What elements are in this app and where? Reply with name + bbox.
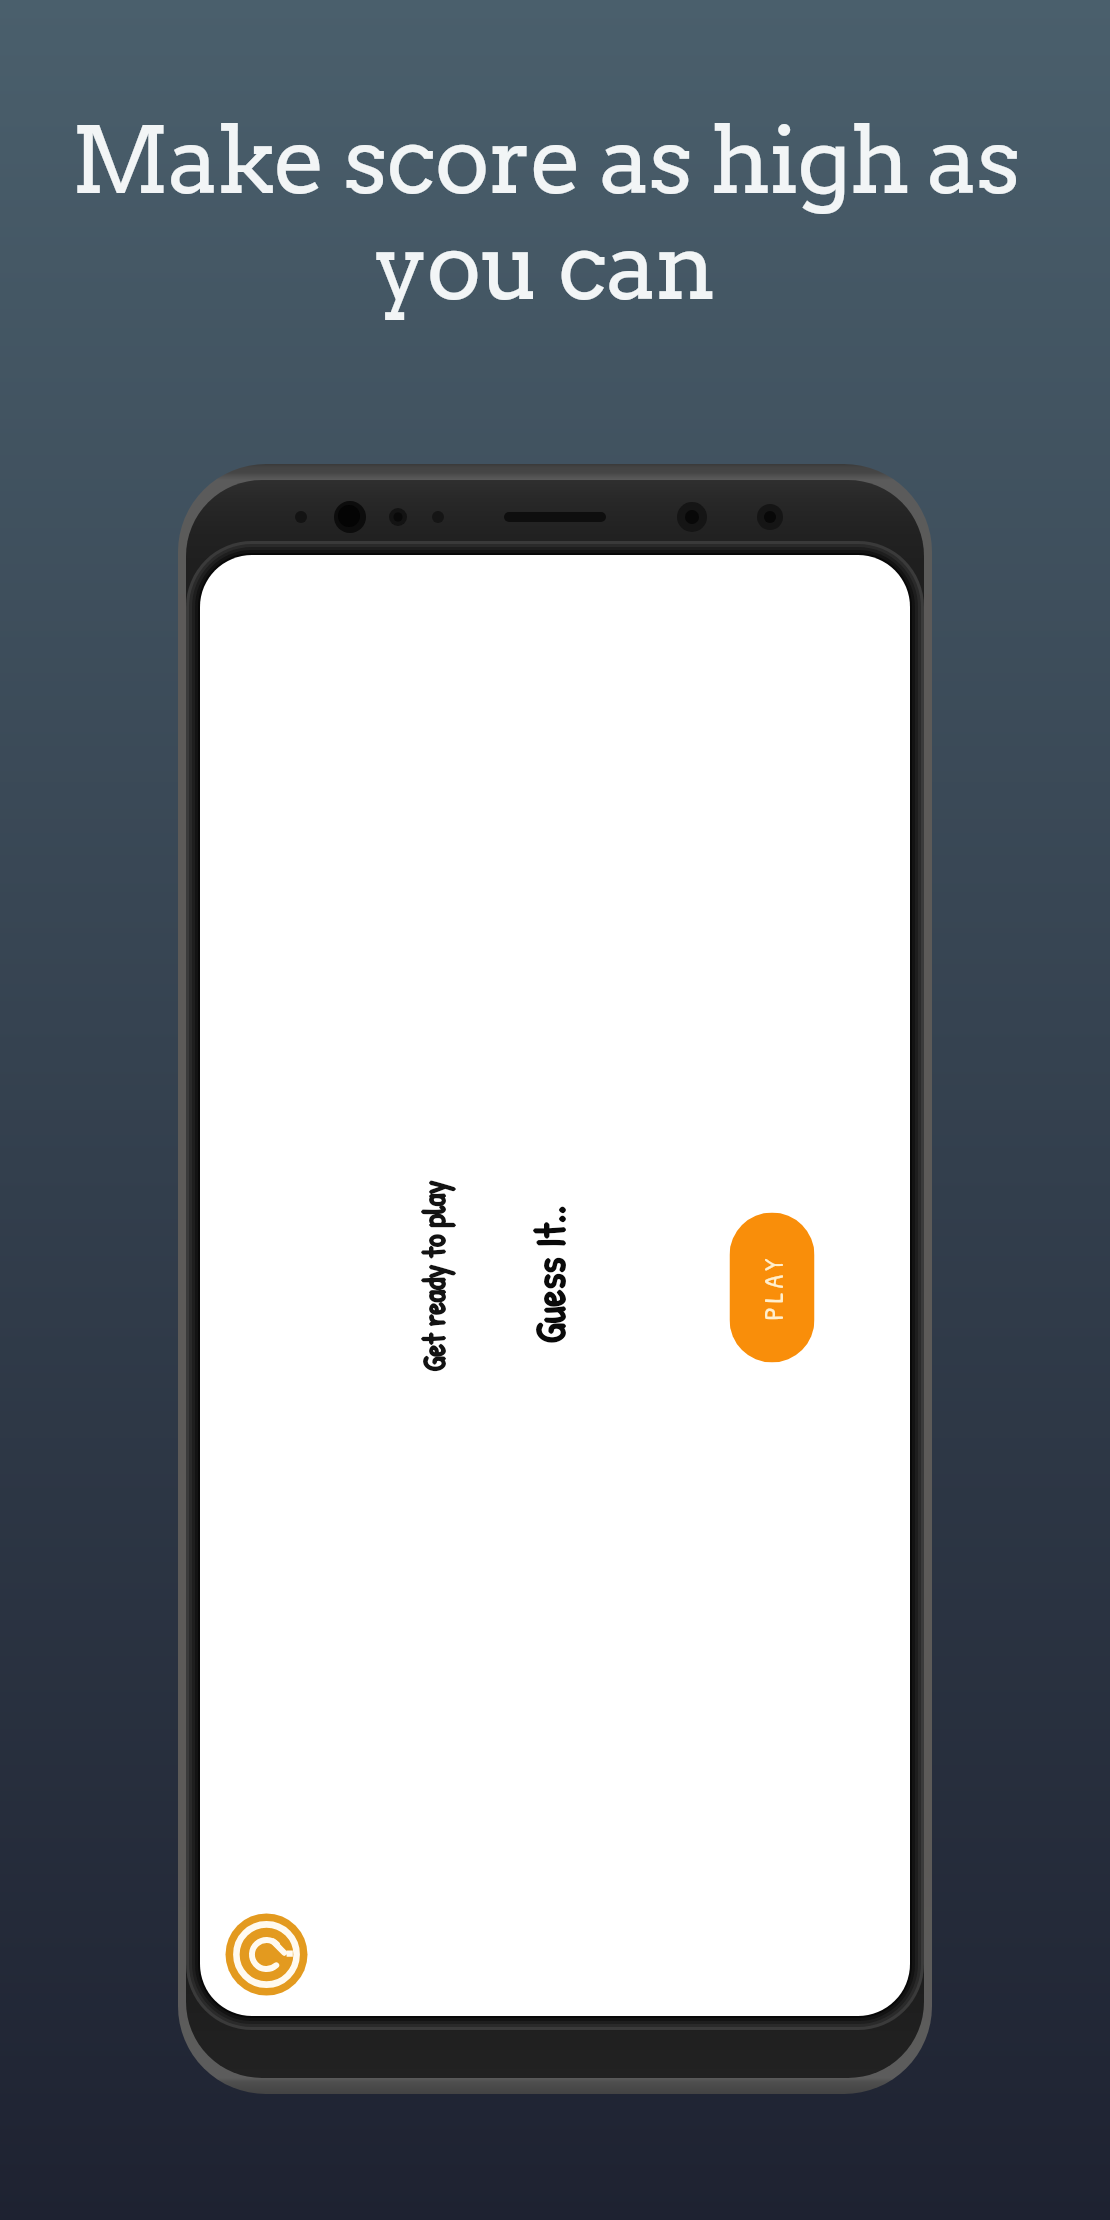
staticText: Guess It..: [521, 1205, 578, 1343]
staticText: Get ready to play: [412, 1180, 454, 1371]
staticText: Guess It..: [519, 1205, 576, 1343]
staticText: Get ready to play: [413, 1180, 455, 1371]
button[interactable]: Replay: [225, 1913, 307, 1995]
staticText: Guess It..: [520, 1204, 577, 1342]
staticText: Get ready to play: [412, 1181, 454, 1372]
staticText: Guess It..: [520, 1205, 577, 1343]
staticText: PLAY: [753, 1254, 791, 1320]
staticText: Get ready to play: [412, 1179, 454, 1370]
staticText: Get ready to play: [411, 1180, 453, 1371]
staticText: Guess It..: [520, 1206, 577, 1344]
staticText: Make score as high as you can: [71, 104, 1019, 322]
button[interactable]: PLAY: [729, 1212, 814, 1362]
